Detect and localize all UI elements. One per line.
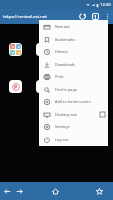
- button[interactable]: https://central.ust.net: [0, 9, 76, 24]
- staticText: Log out: [55, 137, 69, 142]
- button[interactable]: Back: [0, 182, 14, 200]
- button[interactable]: Forward: [12, 182, 26, 200]
- staticText: Add to home screen: [55, 99, 91, 104]
- button[interactable]: Tabs: [89, 9, 102, 24]
- staticText: Print: [55, 74, 64, 79]
- staticText: History: [55, 49, 68, 54]
- staticText: 12:30: [100, 2, 111, 8]
- staticText: Desktop site: [55, 112, 78, 117]
- staticText: Downloads: [55, 62, 75, 67]
- button[interactable]: Bookmarks: [92, 182, 106, 200]
- button[interactable]: Reload: [76, 9, 89, 24]
- button[interactable]: App: [36, 80, 49, 93]
- button[interactable]: More options: [102, 9, 113, 24]
- staticText: P: [14, 83, 18, 90]
- button[interactable]: Log out: [39, 133, 108, 146]
- button[interactable]: Desktop site: [39, 108, 108, 121]
- button[interactable]: App: [36, 43, 49, 56]
- staticText: Bookmarks: [55, 37, 76, 42]
- button[interactable]: Downloads: [39, 58, 108, 71]
- button[interactable]: Find in page: [39, 83, 108, 96]
- button[interactable]: New tab: [39, 20, 108, 33]
- staticText: 1: [94, 14, 97, 20]
- staticText: New tab: [55, 24, 70, 29]
- button[interactable]: Settings: [39, 120, 108, 133]
- button[interactable]: History: [39, 45, 108, 58]
- button[interactable]: Add to home screen: [39, 95, 108, 108]
- button[interactable]: Print: [39, 70, 108, 83]
- staticText: Find in page: [55, 87, 77, 92]
- staticText: https://central.ust.net: [3, 13, 47, 19]
- button[interactable]: Pinterest: [9, 80, 22, 93]
- button[interactable]: Office: [9, 43, 22, 56]
- button[interactable]: Home: [48, 182, 62, 200]
- staticText: Settings: [55, 124, 70, 129]
- button[interactable]: Bookmarks: [39, 33, 108, 46]
